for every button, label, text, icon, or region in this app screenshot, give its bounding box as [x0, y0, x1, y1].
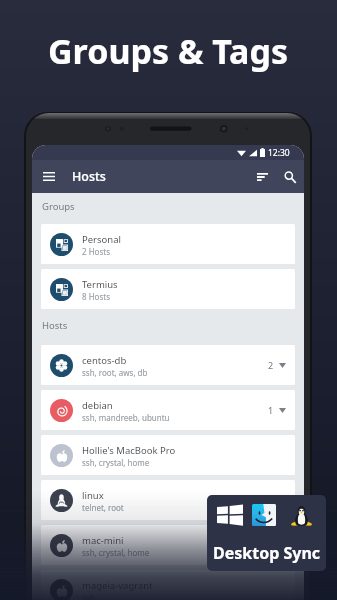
button[interactable]: Sort [249, 160, 275, 193]
staticText: 2 [268, 359, 274, 371]
staticText: Groups & Tags [48, 28, 289, 74]
staticText: Groups [42, 200, 75, 213]
button[interactable]: Hollie's MacBook Pro [41, 435, 295, 475]
button[interactable]: centos-db [41, 345, 295, 385]
staticText: ssh, crystal, home [82, 547, 150, 558]
staticText: ssh, mandreeb, ubuntu [82, 412, 170, 423]
staticText: debian [82, 399, 113, 412]
button[interactable]: Termius [41, 269, 295, 309]
staticText: Hosts [42, 319, 68, 332]
staticText: mac-mini [82, 534, 124, 547]
staticText: ssh [82, 592, 95, 600]
button[interactable]: mageia-vagrant [41, 570, 295, 600]
staticText: 8 Hosts [82, 291, 110, 302]
button[interactable]: Search [275, 160, 304, 193]
staticText: telnet, root [82, 502, 124, 513]
staticText: ssh, root, aws, db [82, 367, 148, 378]
staticText: 2 Hosts [82, 246, 110, 257]
button[interactable]: debian [41, 390, 295, 430]
button[interactable]: Open navigation menu [32, 160, 66, 193]
staticText: Termius [82, 278, 118, 291]
staticText: mageia-vagrant [82, 579, 153, 592]
staticText: Hollie's MacBook Pro [82, 444, 176, 457]
button[interactable]: linux [41, 480, 295, 520]
button[interactable]: Personal [41, 224, 295, 264]
button[interactable]: mac-mini [41, 525, 295, 565]
staticText: centos-db [82, 354, 127, 367]
staticText: 12:30 [268, 147, 290, 159]
staticText: 1 [268, 404, 274, 416]
staticText: linux [82, 489, 104, 502]
staticText: Personal [82, 233, 121, 246]
staticText: Hosts [72, 168, 106, 185]
staticText: Desktop Sync [213, 542, 321, 564]
staticText: ssh, crystal, home [82, 457, 150, 468]
button[interactable]: Desktop Sync [207, 495, 326, 571]
